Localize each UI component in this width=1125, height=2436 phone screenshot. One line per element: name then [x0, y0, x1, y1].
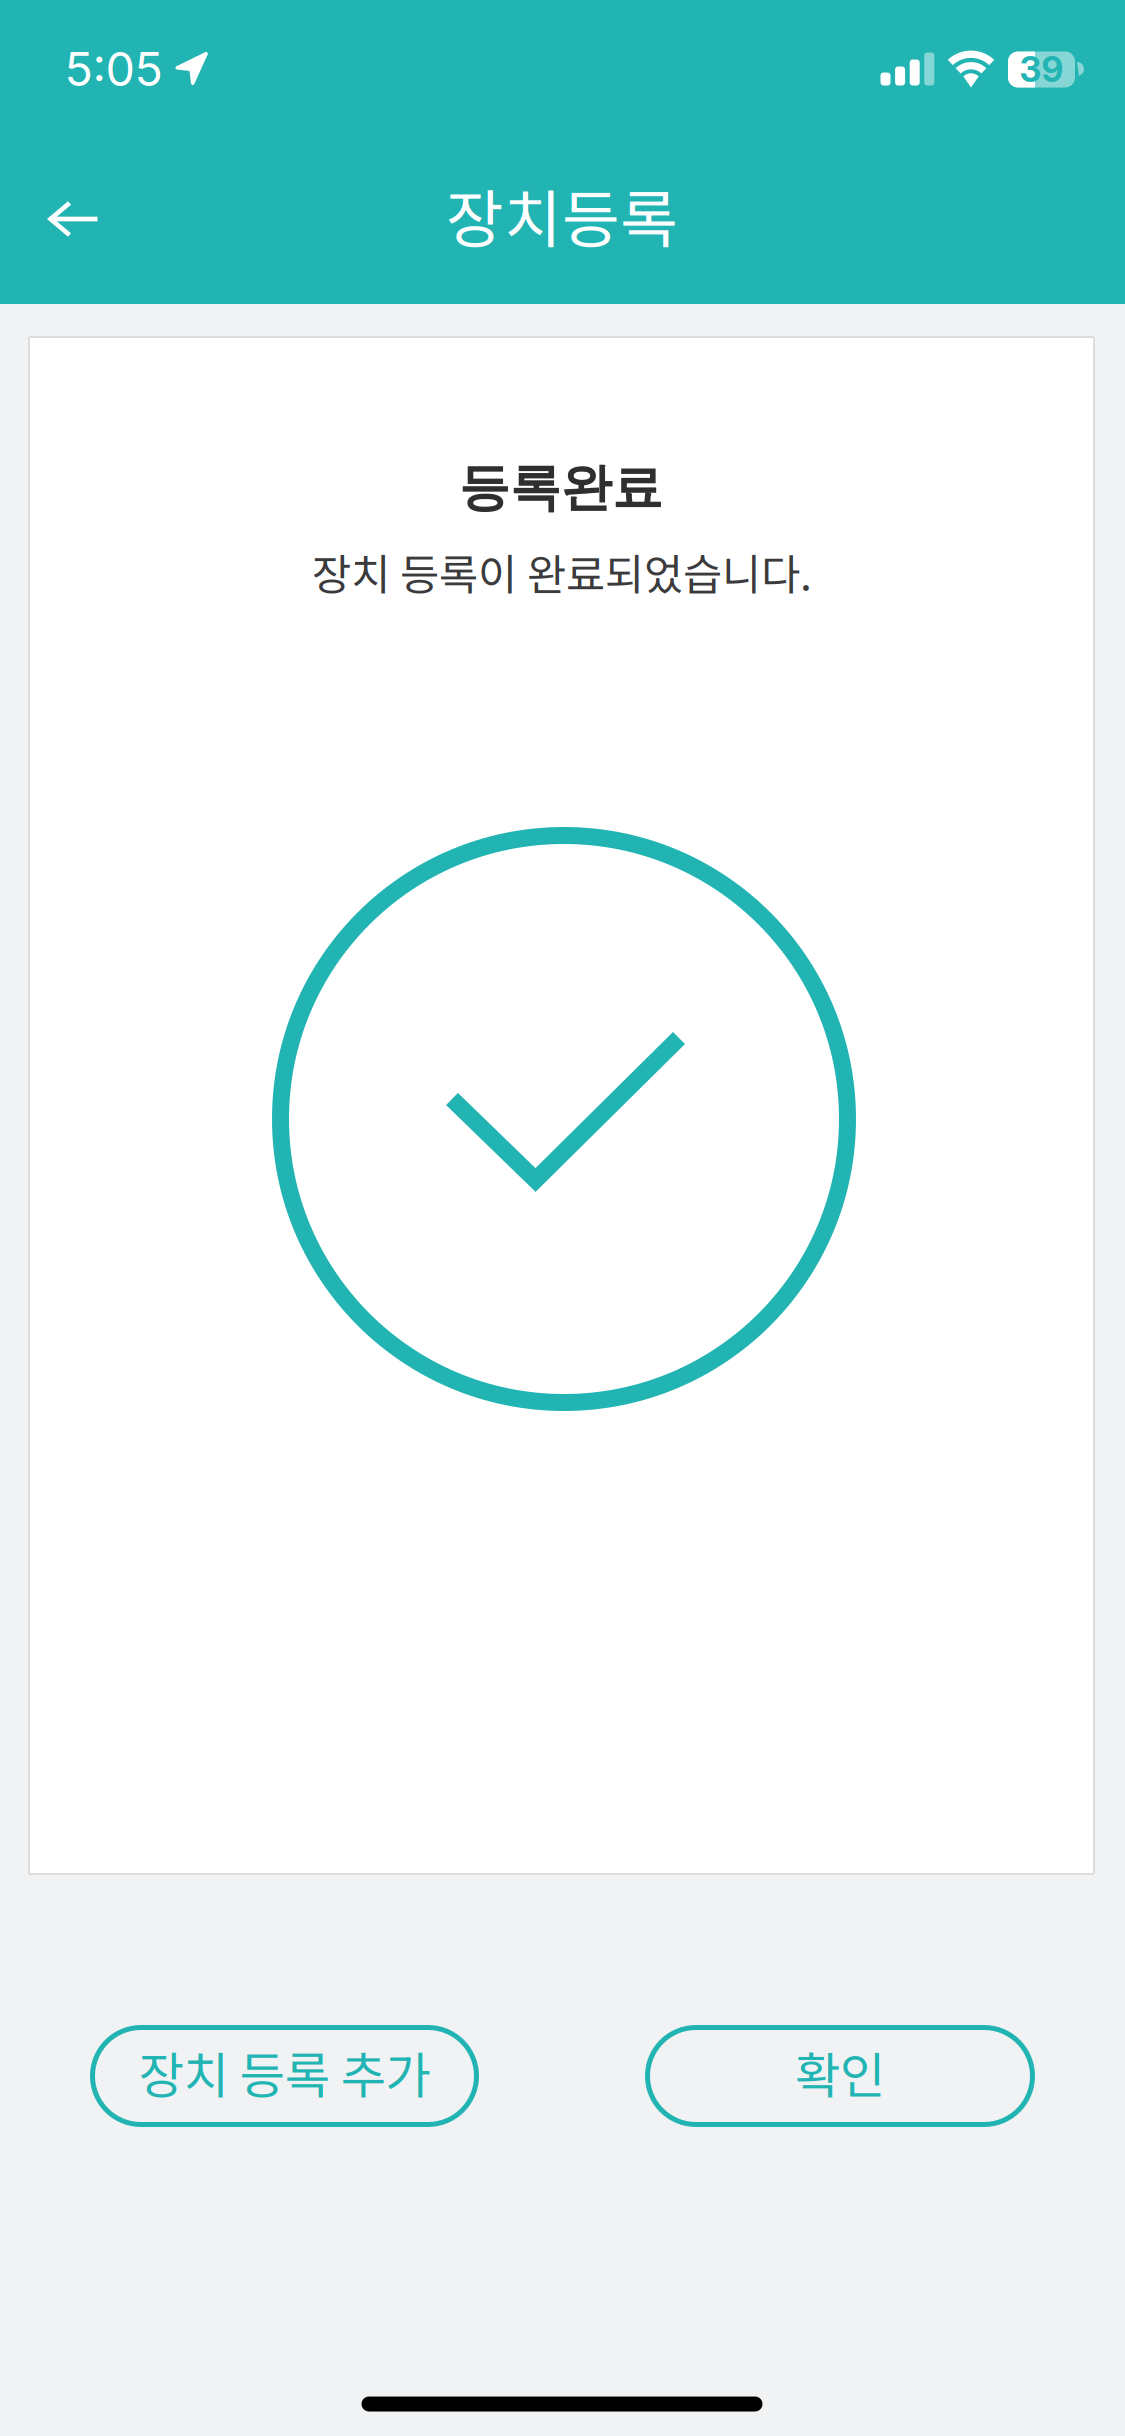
staticText: 확인: [795, 2036, 885, 2108]
staticText: 장치등록: [446, 170, 678, 260]
staticText: 등록완료: [459, 456, 663, 520]
staticText: 39: [1019, 48, 1063, 90]
staticText: 장치 등록 추가: [138, 2036, 430, 2108]
staticText: 5:05: [64, 41, 162, 97]
staticText: 장치 등록이 완료되었습니다.: [312, 541, 812, 603]
button[interactable]: Back: [18, 171, 130, 267]
button[interactable]: 장치 등록 추가: [90, 2025, 479, 2127]
button[interactable]: 확인: [645, 2025, 1035, 2127]
